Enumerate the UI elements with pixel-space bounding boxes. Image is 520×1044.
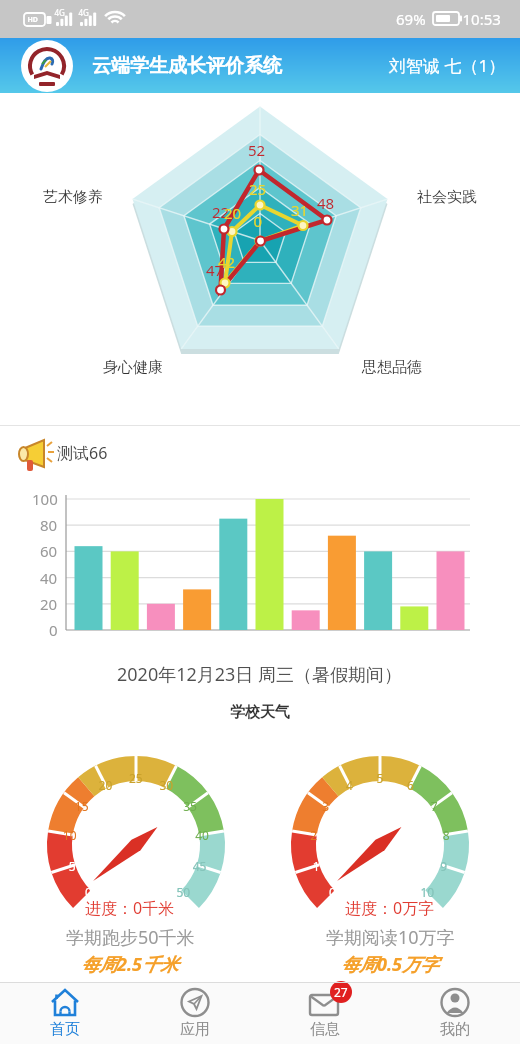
staticText: 首页	[50, 1020, 80, 1039]
button[interactable]: 刘智诚 七（1）	[389, 54, 506, 77]
staticText: 每周2.5千米	[81, 952, 179, 977]
button[interactable]: 27	[260, 982, 390, 1044]
button[interactable]: 应用	[130, 982, 260, 1044]
staticText: 我的	[440, 1020, 470, 1039]
button[interactable]: 测试66	[0, 425, 520, 481]
staticText: 云端学生成长评价系统	[92, 54, 282, 78]
staticText: 进度：0万字	[345, 897, 435, 919]
staticText: 学校天气	[230, 703, 290, 722]
staticText: 测试66	[57, 442, 108, 464]
staticText: 每周0.5万字	[341, 952, 439, 977]
button[interactable]: 首页	[0, 982, 130, 1044]
staticText: 27	[334, 984, 348, 1000]
button[interactable]: 我的	[390, 982, 520, 1044]
staticText: 2020年12月23日 周三（暑假期间）	[117, 662, 403, 687]
staticText: 进度：0千米	[85, 897, 175, 919]
staticText: 信息	[310, 1020, 340, 1039]
staticText: 学期阅读10万字	[326, 925, 455, 950]
staticText: 学期跑步50千米	[66, 925, 195, 950]
staticText: 应用	[180, 1020, 210, 1039]
